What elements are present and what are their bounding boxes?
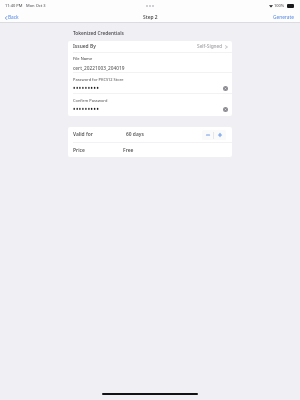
staticText: Back bbox=[8, 14, 19, 21]
button[interactable]: Back bbox=[4, 13, 20, 22]
staticText: 60 days bbox=[126, 131, 144, 138]
button[interactable]: Increase bbox=[214, 130, 226, 140]
staticText: File Name bbox=[73, 56, 93, 61]
staticText: 100% bbox=[274, 3, 285, 8]
staticText: Password for PKCS12 Store bbox=[73, 77, 124, 82]
staticText: Mon Oct 3 bbox=[26, 3, 46, 8]
button[interactable]: Clear text bbox=[221, 105, 229, 113]
button[interactable]: Issued By bbox=[68, 41, 232, 52]
staticText: Issued By bbox=[73, 43, 96, 50]
button[interactable]: Generate bbox=[272, 13, 295, 22]
staticText: Price bbox=[73, 147, 85, 154]
staticText: Free bbox=[123, 147, 134, 154]
staticText: Confirm Password bbox=[73, 98, 108, 103]
staticText: Step 2 bbox=[143, 14, 158, 21]
button[interactable]: Decrease bbox=[202, 130, 213, 140]
staticText: Self-Signed bbox=[197, 43, 223, 50]
staticText: Tokenized Credentials bbox=[73, 30, 124, 36]
staticText: ••••••••• bbox=[73, 105, 100, 113]
staticText: cert_20221003_204019 bbox=[73, 65, 125, 72]
staticText: ••••••••• bbox=[73, 84, 100, 92]
button[interactable]: Clear text bbox=[221, 84, 229, 92]
staticText: Generate bbox=[273, 14, 294, 21]
staticText: Valid for bbox=[73, 131, 93, 138]
staticText: 11:40 PM bbox=[5, 3, 23, 8]
